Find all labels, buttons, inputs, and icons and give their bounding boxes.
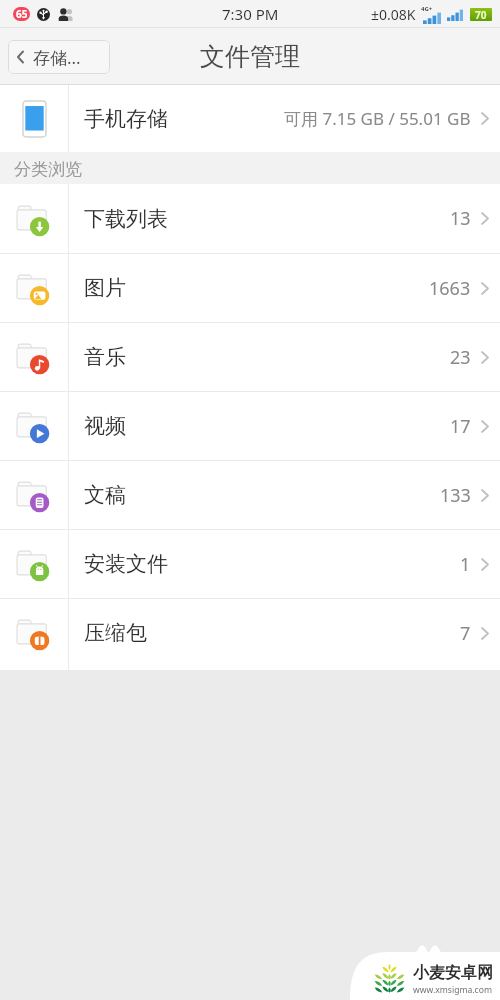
staticText: 音乐 bbox=[84, 344, 126, 370]
staticText: 存储... bbox=[33, 46, 81, 69]
staticText: 23 bbox=[450, 345, 471, 370]
staticText: 1 bbox=[460, 552, 471, 577]
staticText: 小麦安卓网 bbox=[413, 963, 493, 983]
staticText: 压缩包 bbox=[84, 620, 147, 646]
staticText: 7 bbox=[460, 621, 471, 646]
staticText: 可用 7.15 GB / 55.01 GB bbox=[284, 107, 471, 130]
staticText: 视频 bbox=[84, 413, 126, 439]
staticText: 7:30 PM bbox=[222, 4, 279, 24]
staticText: 13 bbox=[450, 206, 471, 231]
staticText: 文件管理 bbox=[200, 41, 300, 72]
staticText: 图片 bbox=[84, 275, 126, 301]
staticText: 下载列表 bbox=[84, 206, 168, 232]
staticText: 4G+ bbox=[421, 5, 433, 13]
button[interactable]: 返回 存储 bbox=[8, 40, 110, 74]
staticText: ±0.08K bbox=[371, 5, 416, 24]
staticText: 17 bbox=[450, 414, 471, 439]
staticText: 安装文件 bbox=[84, 551, 168, 577]
button[interactable]: 文稿 bbox=[0, 461, 500, 529]
button[interactable]: 视频 bbox=[0, 392, 500, 460]
button[interactable]: 手机存储 bbox=[0, 85, 500, 152]
button[interactable]: 图片 bbox=[0, 254, 500, 322]
staticText: 133 bbox=[440, 483, 471, 508]
staticText: 分类浏览 bbox=[14, 159, 82, 180]
staticText: www.xmsigma.com bbox=[413, 984, 492, 996]
button[interactable]: 音乐 bbox=[0, 323, 500, 391]
staticText: 文稿 bbox=[84, 482, 126, 508]
staticText: 70 bbox=[475, 8, 487, 21]
staticText: 1663 bbox=[429, 276, 471, 301]
staticText: 65 bbox=[16, 7, 28, 21]
button[interactable]: 下载列表 bbox=[0, 184, 500, 253]
button[interactable]: 压缩包 bbox=[0, 599, 500, 667]
staticText: 手机存储 bbox=[84, 106, 168, 132]
button[interactable]: 安装文件 bbox=[0, 530, 500, 598]
